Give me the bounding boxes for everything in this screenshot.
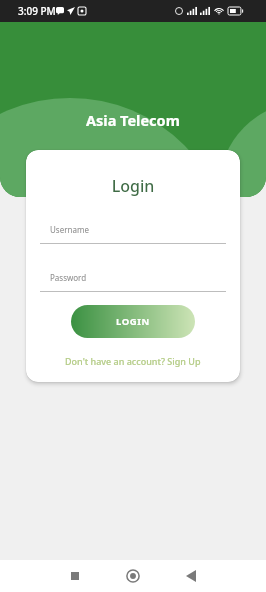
- staticText: 3:09 PM: [18, 4, 56, 18]
- staticText: Username: [50, 224, 89, 235]
- staticText: Login: [26, 175, 240, 197]
- button[interactable]: LOGIN: [71, 305, 195, 338]
- staticText: LOGIN: [116, 315, 150, 328]
- button[interactable]: Home: [112, 560, 153, 592]
- button[interactable]: Password: [40, 272, 226, 292]
- staticText: Don't have an account? Sign Up: [65, 355, 201, 367]
- button[interactable]: Don't have an account? Sign Up: [26, 355, 240, 375]
- button[interactable]: Username: [40, 224, 226, 244]
- staticText: Asia Telecom: [86, 110, 180, 130]
- button[interactable]: Back: [170, 560, 211, 592]
- button[interactable]: Recent apps: [54, 560, 95, 592]
- staticText: Password: [50, 272, 87, 283]
